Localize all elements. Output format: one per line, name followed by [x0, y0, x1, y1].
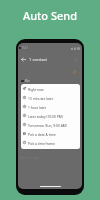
staticText: 1 contact [29, 57, 47, 63]
button[interactable]: Later today (10:00 PM) [21, 111, 80, 120]
button[interactable]: Right now [21, 84, 80, 93]
staticText: 15 minutes later [28, 96, 54, 100]
button[interactable]: 1 hour later [21, 102, 80, 111]
staticText: Pick a time frame [28, 141, 55, 145]
staticText: 1 hour later [28, 105, 47, 109]
button[interactable]: Pick a time frame [21, 138, 80, 147]
staticText: Mia [25, 79, 30, 83]
button[interactable]: Tomorrow (Sun, 9:00 AM) [21, 120, 80, 129]
button[interactable]: Pick a date & time [21, 129, 80, 138]
staticText: Later today (10:00 PM) [28, 114, 63, 118]
staticText: Tomorrow (Sun, 9:00 AM) [28, 123, 67, 127]
staticText: Auto Send [23, 8, 77, 23]
button[interactable]: Close [72, 56, 80, 64]
staticText: Pick a date & time [28, 132, 56, 136]
button[interactable]: 15 minutes later [21, 93, 80, 102]
staticText: 9:41 [22, 46, 28, 50]
button[interactable]: Back [19, 55, 28, 64]
button[interactable]: Send [73, 71, 76, 74]
staticText: Right now [28, 87, 44, 91]
